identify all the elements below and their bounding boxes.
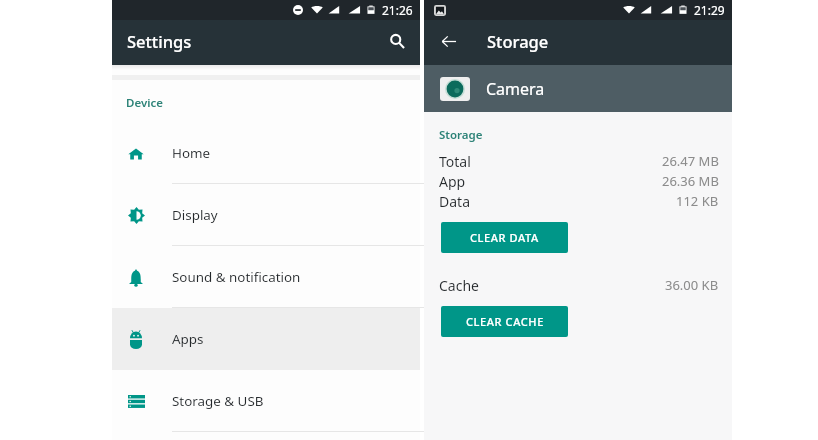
staticText: Storage xyxy=(487,30,549,52)
staticText: 21:26 xyxy=(382,2,413,18)
staticText: 26.36 MB xyxy=(662,172,719,190)
staticText: Sound & notification xyxy=(172,268,301,286)
staticText: Settings xyxy=(127,30,192,52)
staticText: 112 KB xyxy=(676,192,719,210)
button[interactable]: Display xyxy=(112,184,420,246)
staticText: Device xyxy=(126,95,163,111)
staticText: Apps xyxy=(172,330,204,348)
staticText: Camera xyxy=(486,78,545,100)
button[interactable]: Apps xyxy=(112,308,420,370)
staticText: Home xyxy=(172,144,211,162)
staticText: 36.00 KB xyxy=(665,276,719,294)
button[interactable]: Back xyxy=(435,29,463,57)
staticText: Storage & USB xyxy=(172,392,264,410)
staticText: Data xyxy=(439,192,470,210)
staticText: CLEAR CACHE xyxy=(466,314,544,329)
staticText: App xyxy=(439,172,466,190)
staticText: CLEAR DATA xyxy=(470,230,539,245)
button[interactable]: Sound & notification xyxy=(112,246,420,308)
button[interactable]: Storage & USB xyxy=(112,370,420,432)
button[interactable]: CLEAR DATA xyxy=(441,222,568,253)
staticText: Display xyxy=(172,206,218,224)
button[interactable]: CLEAR CACHE xyxy=(441,306,568,337)
button[interactable]: Search xyxy=(382,28,412,58)
staticText: Cache xyxy=(439,276,479,294)
button[interactable]: Home xyxy=(112,122,420,184)
staticText: Storage xyxy=(439,127,483,143)
staticText: 21:29 xyxy=(694,2,725,18)
staticText: 26.47 MB xyxy=(662,152,719,170)
staticText: Total xyxy=(439,152,471,170)
